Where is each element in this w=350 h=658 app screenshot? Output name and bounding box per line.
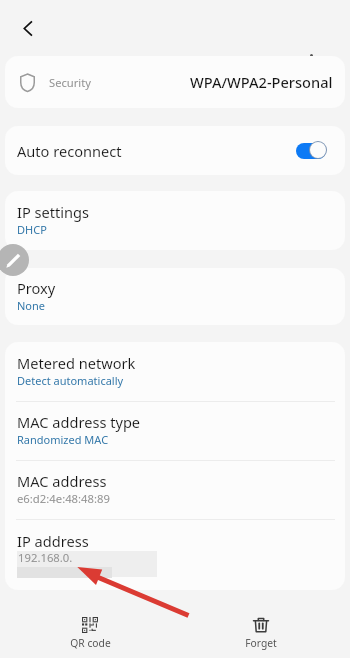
button[interactable]: IP address — [5, 520, 345, 579]
staticText: Security — [49, 75, 91, 90]
button[interactable]: Metered network — [5, 343, 345, 401]
staticText: Randomized MAC — [17, 432, 109, 447]
button[interactable]: Forget — [201, 601, 321, 650]
button[interactable]: Security — [5, 56, 345, 108]
button[interactable]: Proxy — [5, 268, 345, 325]
staticText: Forget — [245, 636, 277, 650]
button[interactable]: MAC address type — [5, 402, 345, 460]
staticText: MAC address — [17, 471, 107, 491]
staticText: e6:d2:4e:48:48:89 — [17, 491, 110, 506]
staticText: Detect automatically — [17, 373, 124, 388]
button[interactable]: Auto reconnect — [5, 126, 345, 175]
button[interactable]: MAC address — [5, 461, 345, 519]
staticText: IP address — [17, 531, 89, 551]
staticText: None — [17, 298, 46, 313]
button[interactable]: QR code — [30, 601, 150, 650]
staticText: Proxy — [17, 278, 56, 298]
staticText: 192.168.0. — [18, 550, 73, 565]
staticText: Metered network — [17, 353, 136, 373]
staticText: Auto reconnect — [17, 141, 122, 161]
button[interactable]: IP settings — [5, 191, 345, 250]
staticText: DHCP — [17, 222, 47, 237]
button[interactable]: Back — [10, 10, 46, 46]
button[interactable]: Edit IP settings — [0, 244, 29, 276]
staticText: QR code — [70, 636, 111, 650]
staticText: MAC address type — [17, 412, 141, 432]
staticText: WPA/WPA2-Personal — [190, 72, 333, 92]
staticText: IP settings — [17, 202, 90, 222]
